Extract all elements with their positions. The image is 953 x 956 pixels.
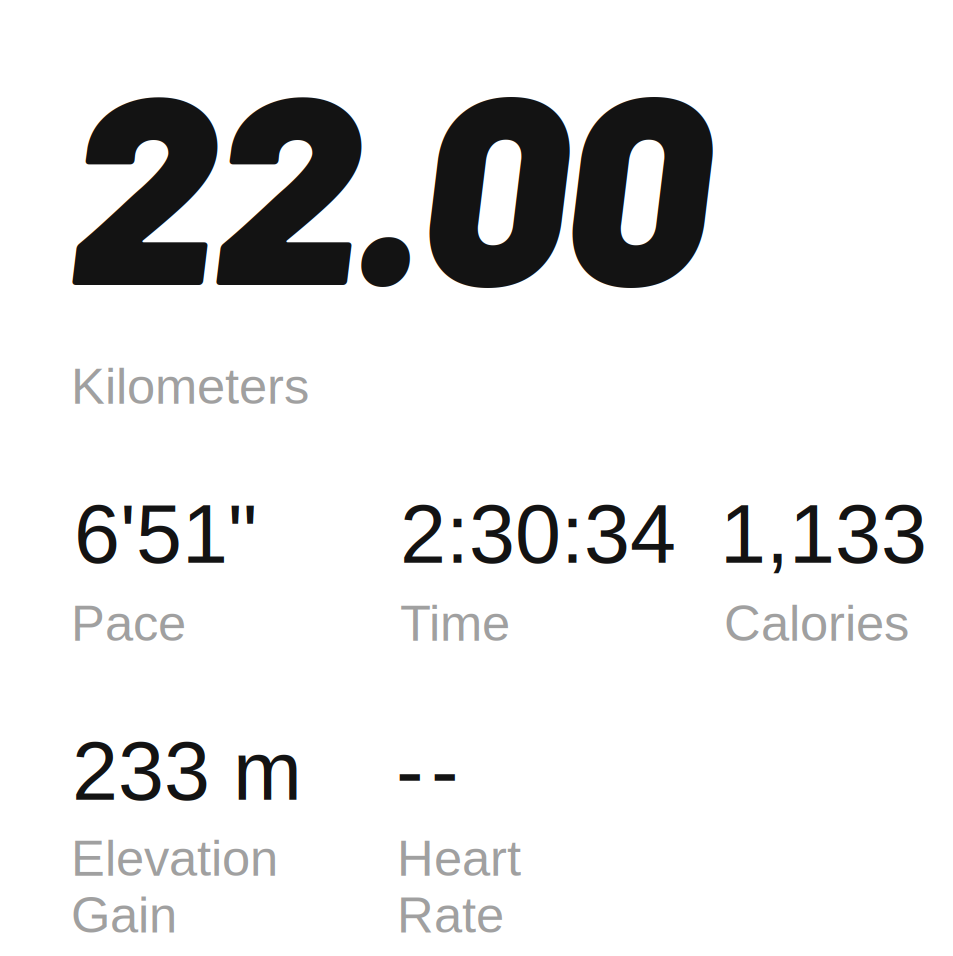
button[interactable]: 233 m [72, 725, 302, 817]
button[interactable]: Elevation Gain [71, 830, 278, 943]
staticText: Pace [71, 595, 186, 652]
button[interactable]: Time [400, 595, 510, 652]
staticText: 0 [420, 21, 567, 338]
button[interactable]: 6'51" [74, 488, 257, 580]
staticText: 0 [563, 21, 710, 338]
staticText: - [431, 725, 459, 817]
staticText: Time [400, 595, 510, 652]
button[interactable]: Pace [71, 595, 186, 652]
staticText: 233 m [72, 725, 302, 817]
staticText: 2:30:34 [400, 488, 676, 580]
staticText: 1,133 [720, 488, 927, 580]
button[interactable]: Calories [724, 595, 909, 652]
staticText: Kilometers [71, 358, 309, 415]
staticText: Calories [724, 595, 909, 652]
button[interactable]: No data [396, 725, 459, 817]
button[interactable]: 22.00 [68, 21, 710, 338]
button[interactable]: 2:30:34 [400, 488, 676, 580]
staticText: 6'51" [74, 488, 257, 580]
staticText: Heart Rate [397, 830, 521, 943]
staticText: . [356, 21, 424, 338]
button[interactable]: 1,133 [720, 488, 927, 580]
button[interactable]: Heart Rate [397, 830, 521, 943]
staticText: 2 [68, 21, 216, 338]
staticText: Elevation Gain [71, 830, 278, 943]
staticText: 2 [212, 21, 360, 338]
staticText: - [396, 725, 424, 817]
button[interactable]: Kilometers [71, 358, 309, 415]
